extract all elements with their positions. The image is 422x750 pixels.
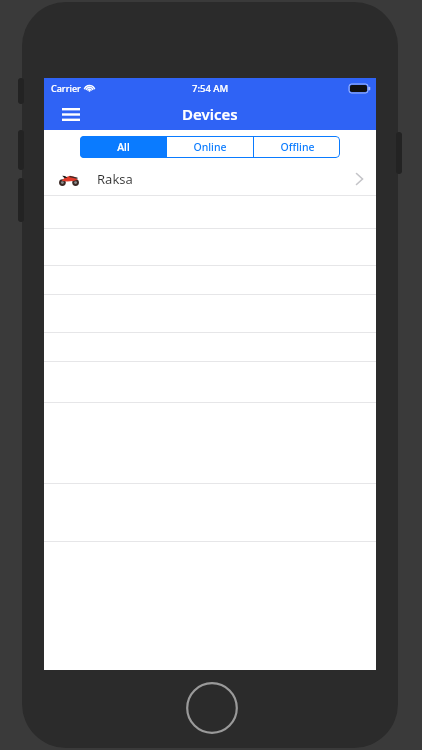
button[interactable]: Raksa — [44, 163, 376, 195]
staticText: Devices — [182, 104, 238, 124]
button[interactable]: Online — [167, 136, 253, 158]
button[interactable]: Menu — [58, 101, 84, 127]
staticText: All — [117, 140, 130, 154]
staticText: 7:54 AM — [192, 82, 229, 95]
staticText: Raksa — [97, 170, 133, 188]
staticText: Offline — [280, 140, 315, 154]
button[interactable]: All — [80, 136, 166, 158]
staticText: Online — [193, 140, 227, 154]
button[interactable]: Offline — [254, 136, 340, 158]
staticText: Carrier — [51, 82, 81, 94]
